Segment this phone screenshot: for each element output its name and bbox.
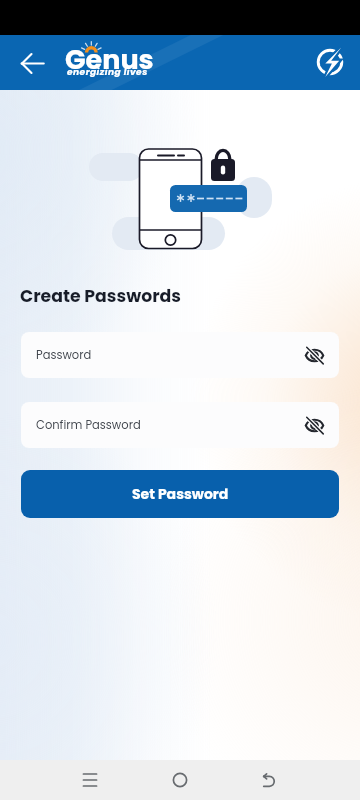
button[interactable]: Set Password bbox=[21, 470, 339, 518]
button[interactable]: Recent apps bbox=[70, 760, 110, 800]
staticText: Set Password bbox=[132, 484, 229, 504]
button[interactable]: Toggle password visibility bbox=[302, 413, 326, 437]
button[interactable]: Toggle password visibility bbox=[302, 343, 326, 367]
button[interactable]: Back bbox=[18, 49, 46, 77]
staticText: Genus bbox=[65, 41, 154, 79]
staticText: energizing lives bbox=[67, 66, 148, 79]
staticText: Confirm Password bbox=[36, 417, 141, 433]
button[interactable]: Password bbox=[21, 332, 339, 378]
staticText: Password bbox=[36, 347, 92, 363]
button[interactable]: Power bbox=[315, 47, 345, 77]
button[interactable]: Confirm Password bbox=[21, 402, 339, 448]
button[interactable]: Home bbox=[160, 760, 200, 800]
staticText: Create Passwords bbox=[20, 284, 181, 308]
button[interactable]: Back bbox=[249, 760, 289, 800]
